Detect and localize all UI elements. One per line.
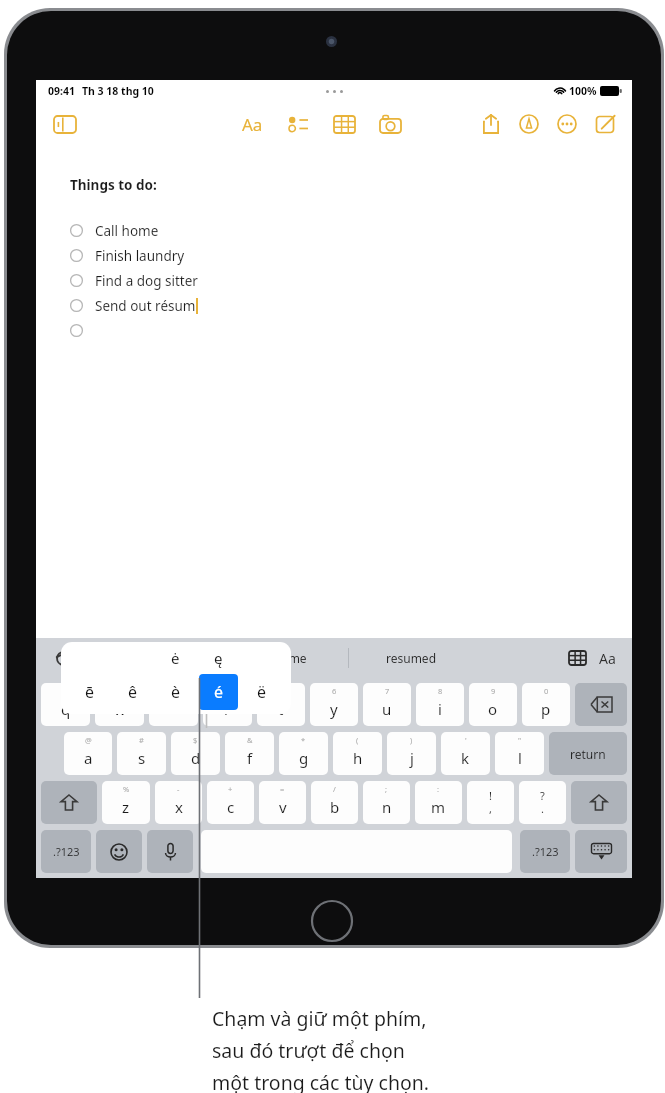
staticText: resume: [264, 650, 307, 666]
button[interactable]: 1: [41, 683, 90, 726]
staticText: %: [123, 784, 130, 794]
button[interactable]: Finish laundry: [70, 243, 185, 268]
staticText: é: [214, 681, 224, 703]
staticText: Chạm và giữ một phím,: [212, 1005, 427, 1032]
button[interactable]: .?123: [41, 830, 91, 873]
staticText: j: [410, 748, 414, 768]
button[interactable]: &: [225, 732, 274, 775]
staticText: Aa: [599, 649, 616, 668]
button[interactable]: Hide keyboard: [575, 830, 627, 873]
staticText: resumed: [386, 650, 437, 666]
button[interactable]: !: [467, 781, 514, 824]
button[interactable]: ē: [71, 674, 109, 710]
staticText: d: [191, 748, 201, 768]
button[interactable]: Shift: [41, 781, 97, 824]
staticText: è: [171, 681, 181, 703]
staticText: ê: [128, 681, 138, 703]
button[interactable]: ê: [113, 674, 152, 710]
button[interactable]: 6: [310, 683, 358, 726]
button[interactable]: ': [441, 732, 490, 775]
button[interactable]: *: [279, 732, 328, 775]
button[interactable]: Dictate: [147, 830, 193, 873]
staticText: ė: [171, 648, 180, 668]
staticText: Call home: [95, 222, 159, 240]
button[interactable]: :: [415, 781, 462, 824]
button[interactable]: More: [548, 105, 586, 143]
staticText: i: [438, 699, 442, 719]
button[interactable]: resume: [223, 643, 348, 673]
button[interactable]: [70, 318, 95, 343]
button[interactable]: Table: [562, 643, 592, 673]
button[interactable]: =: [259, 781, 306, 824]
button[interactable]: /: [311, 781, 358, 824]
button[interactable]: $: [171, 732, 220, 775]
staticText: q: [61, 699, 71, 719]
button[interactable]: .?123: [520, 830, 570, 873]
button[interactable]: 9: [469, 683, 517, 726]
button[interactable]: 4: [203, 683, 252, 726]
staticText: &: [247, 735, 253, 745]
button[interactable]: Format: [592, 643, 622, 673]
button[interactable]: Emoji: [96, 830, 142, 873]
staticText: b: [330, 797, 340, 817]
button[interactable]: e: [149, 683, 198, 726]
button[interactable]: 8: [416, 683, 464, 726]
staticText: (: [356, 735, 359, 745]
button[interactable]: Call home: [70, 218, 159, 243]
staticText: /: [333, 784, 336, 794]
button[interactable]: Send out résum: [70, 293, 198, 318]
staticText: ;: [385, 784, 388, 794]
staticText: =: [280, 784, 285, 794]
staticText: m: [431, 797, 446, 817]
button[interactable]: 7: [363, 683, 411, 726]
button[interactable]: 2: [95, 683, 144, 726]
button[interactable]: ): [387, 732, 436, 775]
button[interactable]: %: [102, 781, 150, 824]
button[interactable]: 0: [522, 683, 570, 726]
button[interactable]: resumed: [349, 643, 474, 673]
staticText: g: [299, 748, 309, 768]
button[interactable]: Format: [232, 104, 272, 144]
staticText: 8: [438, 686, 443, 696]
staticText: z: [122, 797, 130, 817]
button[interactable]: ": [495, 732, 544, 775]
staticText: Finish laundry: [95, 247, 185, 265]
staticText: Th 3 18 thg 10: [82, 84, 154, 98]
button[interactable]: ?: [519, 781, 566, 824]
button[interactable]: Checklist: [278, 104, 318, 144]
button[interactable]: Table: [324, 104, 364, 144]
button[interactable]: New note: [586, 105, 624, 143]
button[interactable]: (: [333, 732, 382, 775]
button[interactable]: ë: [242, 674, 281, 710]
button[interactable]: Markup: [510, 105, 548, 143]
staticText: #: [139, 735, 144, 745]
staticText: ': [465, 735, 467, 745]
button[interactable]: #: [117, 732, 166, 775]
button[interactable]: 5: [257, 683, 305, 726]
button[interactable]: Share: [472, 105, 510, 143]
button[interactable]: è: [156, 674, 195, 710]
button[interactable]: +: [207, 781, 254, 824]
button[interactable]: é: [199, 674, 238, 710]
button[interactable]: Shift: [571, 781, 627, 824]
button[interactable]: Undo: [46, 641, 80, 675]
staticText: Things to do:: [70, 176, 157, 194]
button[interactable]: Camera: [370, 104, 410, 144]
staticText: sau đó trượt để chọn: [212, 1037, 405, 1064]
button[interactable]: Sidebar: [48, 107, 82, 141]
button[interactable]: return: [549, 732, 627, 775]
staticText: @: [85, 735, 92, 745]
button[interactable]: @: [64, 732, 112, 775]
button[interactable]: -: [155, 781, 202, 824]
staticText: 6: [332, 686, 337, 696]
button[interactable]: Delete: [575, 683, 627, 726]
staticText: l: [518, 748, 522, 768]
staticText: Find a dog sitter: [95, 272, 198, 290]
button[interactable]: Find a dog sitter: [70, 268, 198, 293]
staticText: ,: [489, 801, 492, 816]
staticText: r: [224, 699, 231, 719]
button[interactable]: ;: [363, 781, 410, 824]
